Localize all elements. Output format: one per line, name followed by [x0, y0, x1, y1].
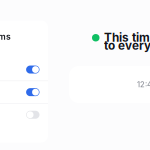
staticText: to everything here [104, 38, 150, 52]
button[interactable]: Function [0, 81, 48, 103]
staticText: Problems [0, 31, 11, 42]
button[interactable]: Filter [0, 59, 48, 81]
staticText: 12:45 [137, 80, 150, 89]
staticText: This timeline applies [104, 30, 150, 44]
button[interactable]: Archive [0, 104, 48, 126]
